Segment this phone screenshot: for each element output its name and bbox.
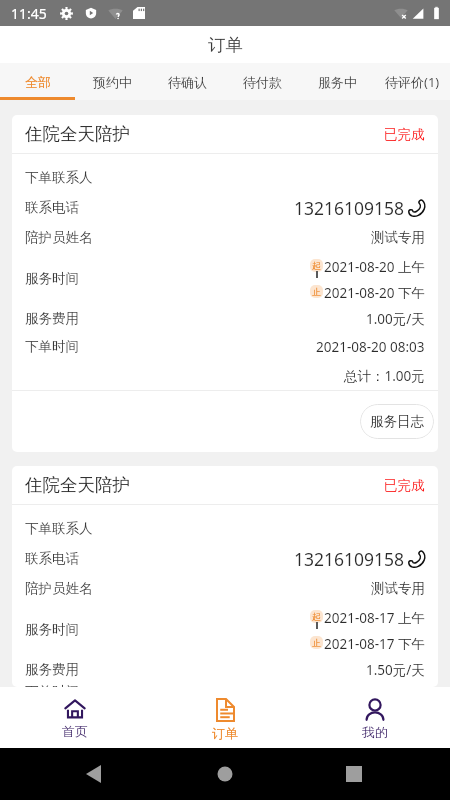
staticText: 住院全天陪护 [25, 474, 130, 496]
staticText: 服务时间 [25, 270, 79, 287]
staticText: 服务费用 [25, 310, 79, 327]
staticText: 2021-08-20 08:03 [316, 338, 425, 356]
staticText: 住院全天陪护 [25, 123, 130, 145]
staticText: 订单 [212, 725, 238, 741]
staticText: 已完成 [384, 126, 425, 143]
staticText: 测试专用 [371, 229, 425, 246]
button[interactable]: Call [409, 551, 425, 567]
staticText: 服务日志 [370, 413, 424, 430]
staticText: 服务时间 [25, 621, 79, 638]
staticText: 止 [312, 637, 321, 648]
staticText: 下单时间 [25, 683, 79, 687]
staticText: 测试专用 [371, 580, 425, 597]
button[interactable]: 订单 [150, 687, 300, 748]
button[interactable]: Call [409, 200, 425, 216]
staticText: 下单时间 [25, 338, 79, 355]
staticText: 联系电话 [25, 550, 79, 567]
staticText: 2021-08-17 下午 [324, 635, 425, 650]
staticText: 起 [312, 260, 321, 271]
button[interactable]: 待付款 [225, 63, 300, 100]
button[interactable]: 我的 [300, 687, 450, 748]
staticText: 联系电话 [25, 199, 79, 216]
button[interactable]: 服务日志 [360, 404, 434, 439]
button[interactable]: 待评价(1) [375, 63, 450, 100]
staticText: 我的 [362, 724, 388, 740]
staticText: 2021-08-17 上午 [324, 609, 425, 624]
staticText: 11:45 [11, 4, 47, 23]
staticText: 订单 [208, 34, 243, 56]
staticText: 2021-08-20 上午 [324, 258, 425, 273]
button[interactable]: 预约中 [75, 63, 150, 100]
staticText: 下单联系人 [25, 520, 93, 537]
staticText: 预约中 [93, 74, 132, 90]
staticText: 陪护员姓名 [25, 580, 93, 597]
staticText: 陪护员姓名 [25, 229, 93, 246]
staticText: 服务费用 [25, 661, 79, 678]
staticText: 2021-08-20 下午 [324, 284, 425, 299]
staticText: 下单联系人 [25, 169, 93, 186]
staticText: 总计：1.00元 [344, 367, 425, 385]
staticText: 待评价(1) [385, 73, 440, 91]
button[interactable]: 全部 [0, 63, 75, 100]
staticText: 服务中 [318, 74, 357, 90]
staticText: 待付款 [243, 74, 282, 90]
button[interactable]: 服务中 [300, 63, 375, 100]
staticText: 全部 [25, 74, 51, 90]
button[interactable]: 待确认 [150, 63, 225, 100]
staticText: 1.00元/天 [366, 310, 425, 328]
staticText: 待确认 [168, 74, 207, 90]
button[interactable]: 首页 [0, 687, 150, 748]
staticText: 13216109158 [294, 547, 405, 571]
staticText: 首页 [62, 723, 88, 739]
staticText: 止 [312, 286, 321, 297]
staticText: 1.50元/天 [366, 661, 425, 679]
staticText: 起 [312, 611, 321, 622]
staticText: 13216109158 [294, 196, 405, 220]
staticText: 已完成 [384, 477, 425, 494]
